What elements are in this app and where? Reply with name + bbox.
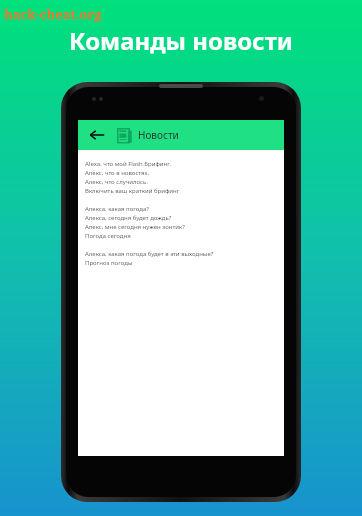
staticText: Алекса, какая погода?	[85, 205, 149, 213]
button[interactable]: Alexa, что мой Flash Брифинг.	[85, 159, 279, 168]
button[interactable]: Back	[85, 123, 109, 147]
button[interactable]: Алекс, что в новостях.	[85, 168, 279, 177]
button[interactable]: Погода сегодня	[85, 231, 279, 240]
button[interactable]: Алекса, какая погода?	[85, 204, 279, 213]
staticText: Включить ваш краткий брифинг	[85, 187, 180, 195]
staticText: Алекс, что в новостях.	[85, 169, 150, 177]
button[interactable]: Алекса, какая погода будет в эти выходны…	[85, 249, 279, 258]
staticText: Алекса, какая погода будет в эти выходны…	[85, 250, 214, 258]
staticText: Алекс, мне сегодня нужен зонтик?	[85, 223, 185, 231]
staticText: Погода сегодня	[85, 232, 131, 240]
button[interactable]: Алекса, сегодня будет дождь?	[85, 213, 279, 222]
staticText: Alexa, что мой Flash Брифинг.	[85, 160, 172, 168]
staticText: Прогноз погоды	[85, 259, 133, 267]
staticText: Алекса, сегодня будет дождь?	[85, 214, 172, 222]
button[interactable]: Включить ваш краткий брифинг	[85, 186, 279, 195]
button[interactable]: Прогноз погоды	[85, 258, 279, 267]
staticText: Команды новости	[69, 24, 293, 57]
staticText: hack-cheat.org	[4, 5, 102, 23]
button[interactable]: Алекс, что случилось.	[85, 177, 279, 186]
staticText: Алекс, что случилось.	[85, 178, 148, 186]
button[interactable]: Алекс, мне сегодня нужен зонтик?	[85, 222, 279, 231]
staticText: Новости	[138, 128, 179, 142]
